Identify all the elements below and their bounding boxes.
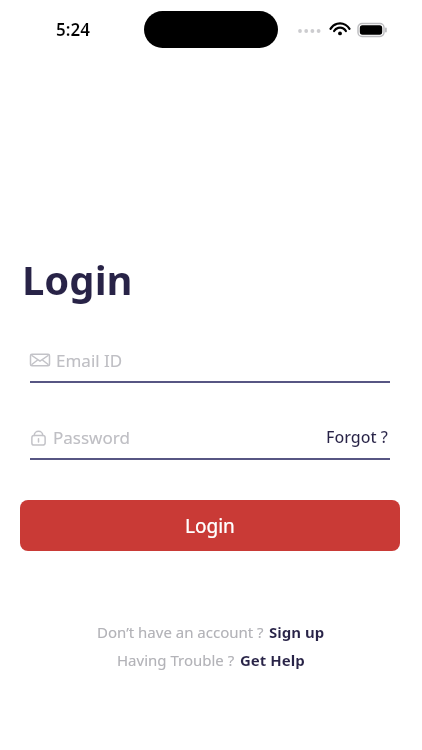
staticText: Login bbox=[185, 513, 235, 539]
button[interactable]: Sign up bbox=[269, 622, 325, 642]
other: Password bbox=[30, 428, 47, 447]
staticText: Having Trouble ? bbox=[117, 650, 235, 670]
staticText: 5:24 bbox=[56, 18, 90, 41]
staticText: Don’t have an account ? bbox=[97, 622, 264, 642]
staticText: Sign up bbox=[269, 622, 325, 642]
button[interactable]: Forgot ? bbox=[324, 422, 390, 452]
button[interactable]: Get Help bbox=[240, 650, 305, 670]
button[interactable]: Email bbox=[30, 338, 390, 382]
staticText: Forgot ? bbox=[326, 426, 388, 448]
staticText: Email ID bbox=[56, 349, 123, 372]
staticText: Password bbox=[53, 426, 130, 449]
other: Email bbox=[30, 352, 50, 368]
staticText: Get Help bbox=[240, 650, 305, 670]
button[interactable]: Password bbox=[30, 416, 324, 458]
button[interactable]: Login bbox=[20, 500, 400, 551]
staticText: Login bbox=[22, 252, 133, 306]
